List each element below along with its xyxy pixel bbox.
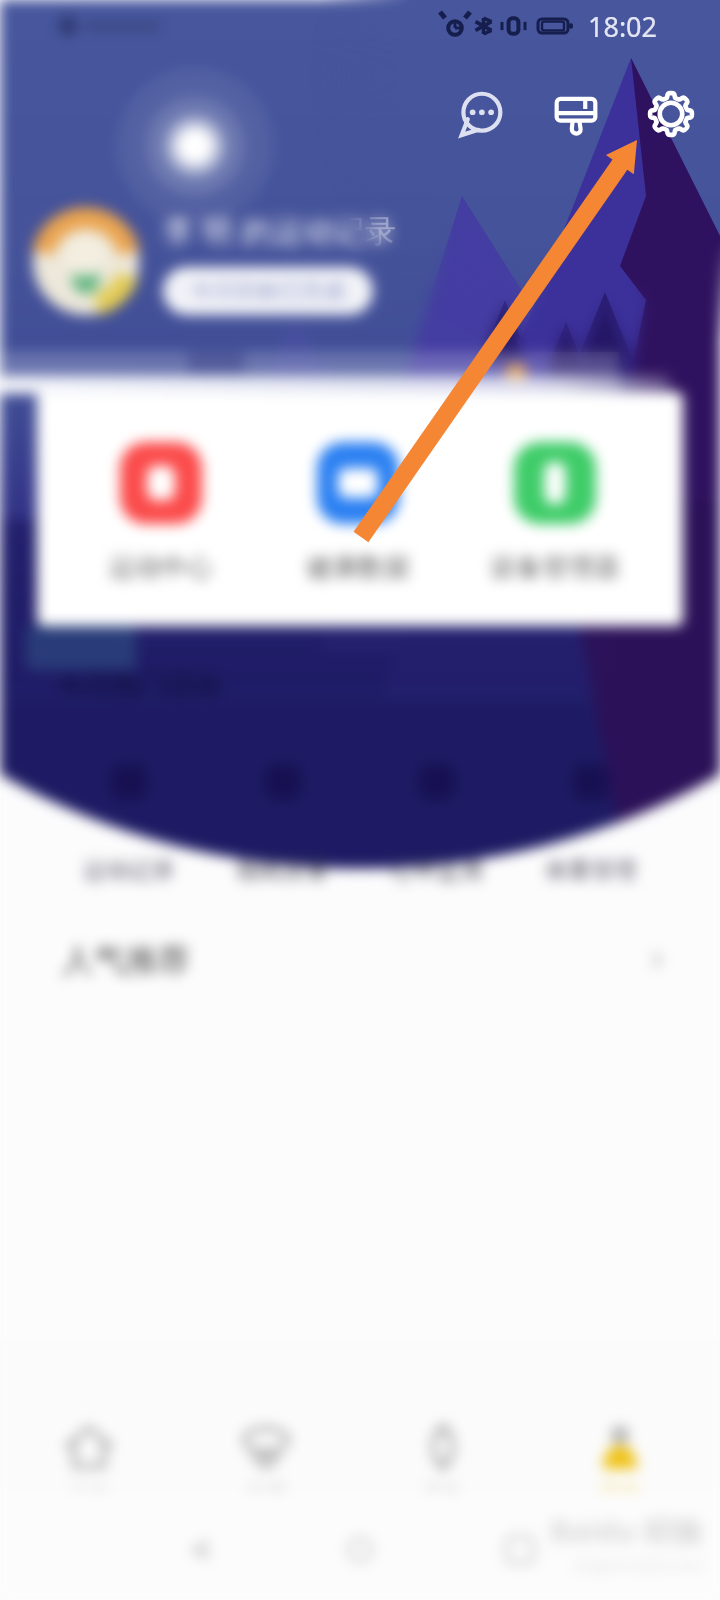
button[interactable]: 运动记录 — [54, 648, 204, 885]
button[interactable]: 体重管理 — [516, 648, 666, 885]
button[interactable]: 健康数据 — [275, 442, 441, 584]
staticText: 今日热门活动 — [58, 668, 220, 702]
button[interactable]: 运动记录 — [54, 648, 204, 885]
staticText: 人气推荐 — [62, 940, 190, 980]
button[interactable]: Messages — [445, 78, 517, 150]
button[interactable]: Messages — [445, 78, 517, 150]
staticText: 睡眠质量 — [237, 856, 329, 885]
button[interactable]: 李 明 的运动记录 — [33, 202, 397, 322]
staticText: 运动中心 — [109, 551, 213, 584]
staticText: 设备管理器 — [490, 551, 620, 584]
staticText: 李 明 的运动记录 — [163, 209, 397, 251]
button[interactable]: 设备 — [354, 1340, 531, 1490]
button[interactable]: 设备管理器 — [472, 442, 638, 584]
staticText: 心率监测 — [391, 856, 483, 885]
button[interactable]: 设备管理器 — [472, 442, 638, 584]
button[interactable]: 运动 — [0, 1340, 177, 1490]
button[interactable]: Settings — [635, 78, 707, 150]
staticText: 今日热门活动 — [58, 668, 220, 702]
staticText: 健康数据 — [306, 551, 410, 584]
staticText: 健康数据 — [306, 551, 410, 584]
button[interactable]: 运动 — [0, 1340, 177, 1490]
button[interactable]: Recents — [492, 1522, 548, 1578]
staticText: 运动记录 — [83, 856, 175, 885]
staticText: 今日目标已完成 — [191, 277, 345, 305]
staticText: 睡眠质量 — [237, 856, 329, 885]
staticText: 心率监测 — [391, 856, 483, 885]
button[interactable]: 我的 — [531, 1340, 708, 1490]
button[interactable]: 体重管理 — [516, 648, 666, 885]
button[interactable]: Recents — [492, 1522, 548, 1578]
button[interactable]: Settings — [635, 78, 707, 150]
button[interactable]: 运动中心 — [78, 442, 244, 584]
staticText: Baidu 经验 — [550, 1510, 704, 1551]
button[interactable]: 今日目标已完成 — [163, 267, 373, 315]
staticText: 设备管理器 — [490, 551, 620, 584]
button[interactable]: 健康数据 — [275, 442, 441, 584]
staticText: 今日目标已完成 — [191, 277, 345, 305]
button[interactable]: 今日目标已完成 — [163, 267, 373, 315]
staticText: 18:02 — [588, 8, 658, 45]
staticText: 18:02 — [588, 8, 658, 45]
button[interactable]: 人气推荐 — [0, 905, 720, 1015]
staticText: Baidu 经验 — [550, 1510, 704, 1551]
staticText: 体重管理 — [545, 856, 637, 885]
staticText: 我的 — [600, 1482, 640, 1490]
button[interactable]: 睡眠质量 — [208, 648, 358, 885]
button[interactable]: 发现 — [177, 1340, 354, 1490]
button[interactable]: 运动中心 — [78, 442, 244, 584]
button[interactable]: 睡眠质量 — [208, 648, 358, 885]
button[interactable]: 李 明 的运动记录 — [33, 202, 397, 322]
button[interactable]: 设备 — [354, 1340, 531, 1490]
button[interactable]: Back — [172, 1522, 228, 1578]
staticText: 运动记录 — [83, 856, 175, 885]
staticText: 体重管理 — [545, 856, 637, 885]
button[interactable]: Theme — [540, 78, 612, 150]
staticText: 人气推荐 — [62, 940, 190, 980]
staticText: 李 明 的运动记录 — [163, 209, 397, 251]
button[interactable]: 心率监测 — [362, 648, 512, 885]
button[interactable]: 人气推荐 — [0, 905, 720, 1015]
button[interactable]: 我的 — [531, 1340, 708, 1490]
button[interactable]: Home — [332, 1522, 388, 1578]
button[interactable]: 发现 — [177, 1340, 354, 1490]
staticText: 我的 — [600, 1482, 640, 1490]
button[interactable]: Back — [172, 1522, 228, 1578]
staticText: 运动中心 — [109, 551, 213, 584]
button[interactable]: 心率监测 — [362, 648, 512, 885]
button[interactable]: Theme — [540, 78, 612, 150]
button[interactable]: Home — [332, 1522, 388, 1578]
